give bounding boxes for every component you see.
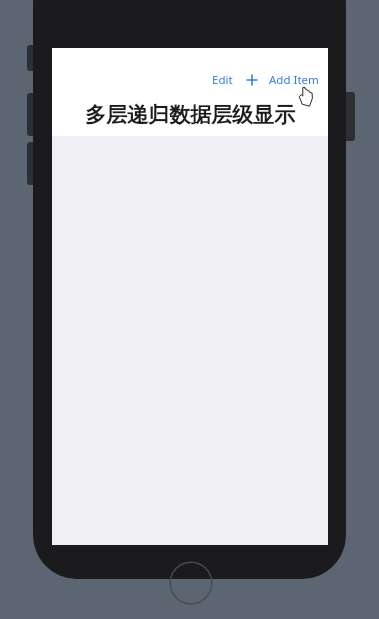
staticText: Add Item [269, 72, 319, 88]
staticText: 多层递归数据层级显示 [52, 102, 328, 128]
button[interactable]: Add [244, 72, 260, 88]
button[interactable]: Edit [209, 70, 236, 90]
staticText: Edit [212, 72, 233, 88]
button[interactable]: Add Item [266, 70, 322, 90]
button[interactable]: Home [169, 561, 213, 605]
